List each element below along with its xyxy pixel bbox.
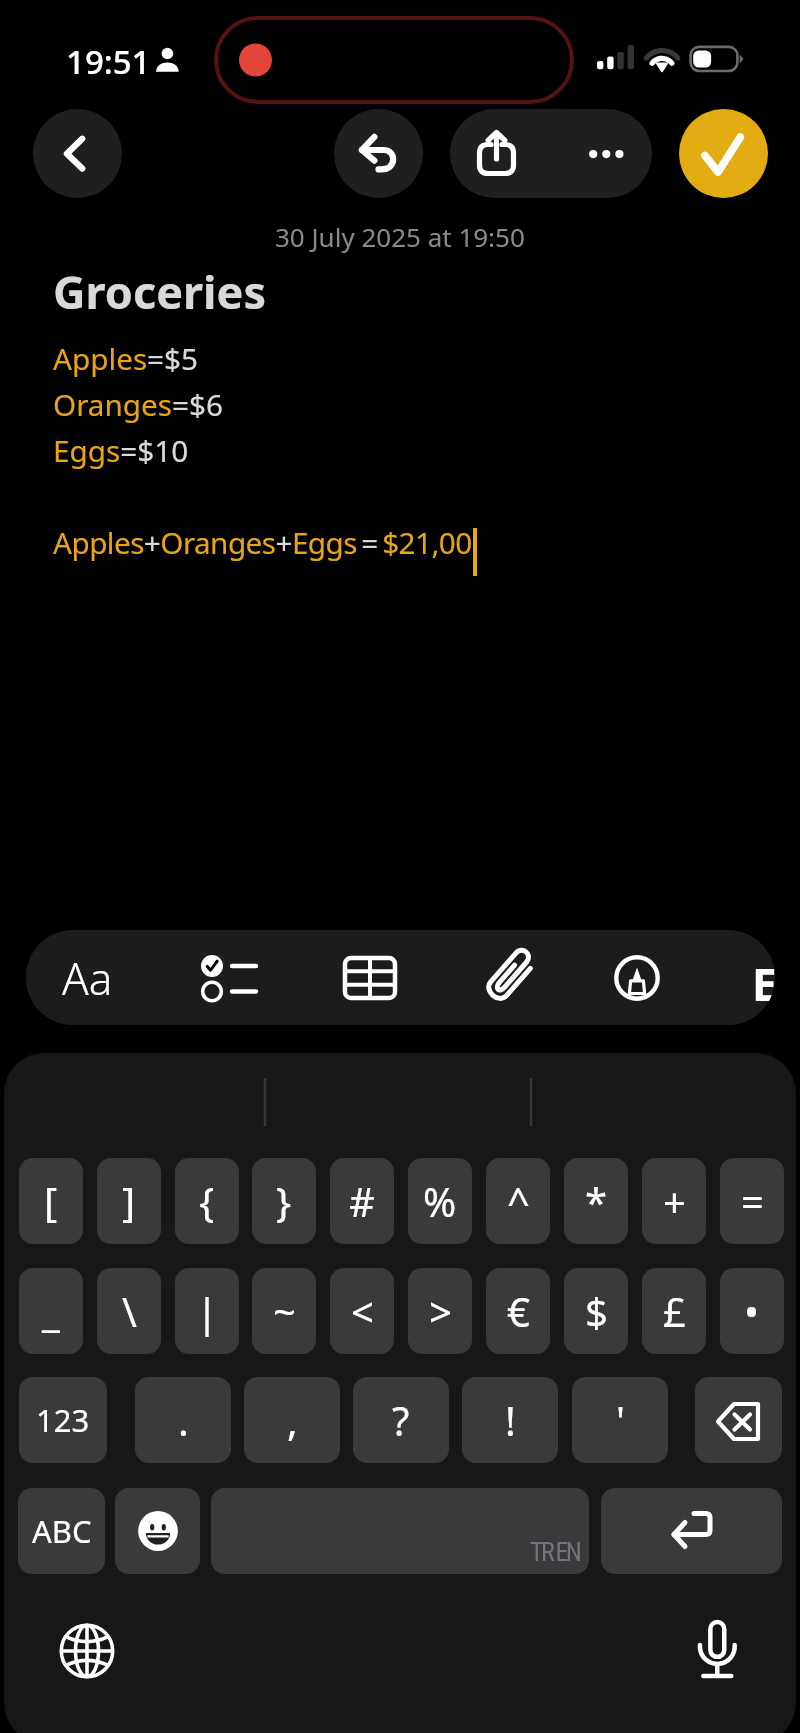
staticText: + bbox=[663, 1174, 686, 1228]
staticText: ? bbox=[392, 1393, 410, 1447]
button[interactable]: Done bbox=[679, 109, 768, 198]
button[interactable]: = bbox=[720, 1158, 784, 1244]
staticText: Aa bbox=[62, 948, 113, 1008]
button[interactable]: ! bbox=[462, 1377, 558, 1463]
button[interactable]: < bbox=[330, 1268, 394, 1354]
button[interactable]: ^ bbox=[486, 1158, 550, 1244]
staticText: 19:51 bbox=[66, 39, 151, 84]
button[interactable]: • bbox=[720, 1268, 784, 1354]
staticText: % bbox=[423, 1174, 457, 1228]
button[interactable]: Return bbox=[601, 1488, 782, 1574]
staticText: 30 July 2025 at 19:50 bbox=[275, 219, 525, 254]
button[interactable]: Aa bbox=[28, 930, 146, 1025]
button[interactable]: ? bbox=[353, 1377, 449, 1463]
button[interactable]: ABC bbox=[18, 1488, 105, 1574]
button[interactable]: . bbox=[135, 1377, 231, 1463]
button[interactable]: More options bbox=[551, 109, 652, 198]
staticText: . bbox=[178, 1393, 189, 1447]
staticText: ] bbox=[122, 1174, 136, 1228]
button[interactable]: Space bbox=[211, 1488, 589, 1574]
button[interactable]: ' bbox=[572, 1377, 668, 1463]
staticText: £ bbox=[663, 1284, 686, 1338]
staticText: , bbox=[287, 1393, 298, 1447]
staticText: $ bbox=[585, 1284, 608, 1338]
button[interactable]: _ bbox=[19, 1268, 83, 1354]
button[interactable]: \ bbox=[97, 1268, 161, 1354]
button[interactable]: { bbox=[175, 1158, 239, 1244]
button[interactable]: ~ bbox=[252, 1268, 316, 1354]
staticText: Apples=$5 Oranges=$6 Eggs=$10 bbox=[53, 338, 224, 471]
staticText: ' bbox=[616, 1393, 625, 1447]
button[interactable]: Checklist bbox=[166, 930, 276, 1025]
staticText: 123 bbox=[36, 1399, 90, 1441]
button[interactable]: [ bbox=[19, 1158, 83, 1244]
staticText: Apples+Oranges+Eggs = $21,00 bbox=[53, 522, 472, 562]
button[interactable]: } bbox=[252, 1158, 316, 1244]
button[interactable]: Back bbox=[33, 109, 122, 198]
staticText: • bbox=[744, 1284, 760, 1338]
staticText: < bbox=[351, 1284, 374, 1338]
button[interactable]: € bbox=[486, 1268, 550, 1354]
staticText: E bbox=[752, 954, 775, 1014]
staticText: { bbox=[199, 1174, 215, 1228]
button[interactable]: Backspace bbox=[695, 1377, 782, 1463]
button[interactable]: Change language bbox=[54, 1618, 120, 1684]
staticText: ! bbox=[505, 1393, 516, 1447]
button[interactable]: Emoji bbox=[115, 1488, 200, 1574]
button[interactable]: | bbox=[175, 1268, 239, 1354]
button[interactable]: , bbox=[244, 1377, 340, 1463]
button[interactable]: Table bbox=[315, 930, 425, 1025]
button[interactable]: 123 bbox=[19, 1377, 107, 1463]
staticText: TR EN bbox=[530, 1537, 580, 1567]
staticText: * bbox=[585, 1174, 608, 1228]
staticText: } bbox=[276, 1174, 292, 1228]
staticText: \ bbox=[122, 1284, 137, 1338]
button[interactable]: Share bbox=[450, 109, 551, 198]
button[interactable]: Markup bbox=[582, 930, 692, 1025]
staticText: ABC bbox=[32, 1510, 92, 1552]
button[interactable]: $ bbox=[564, 1268, 628, 1354]
staticText: € bbox=[507, 1284, 530, 1338]
button[interactable]: Undo bbox=[334, 109, 423, 198]
staticText: [ bbox=[44, 1174, 58, 1228]
button[interactable]: ] bbox=[97, 1158, 161, 1244]
button[interactable]: Attach bbox=[453, 930, 563, 1025]
staticText: > bbox=[429, 1284, 452, 1338]
staticText: = bbox=[741, 1174, 764, 1228]
staticText: ^ bbox=[507, 1174, 530, 1228]
button[interactable]: * bbox=[564, 1158, 628, 1244]
button[interactable]: Voice input bbox=[687, 1613, 749, 1675]
staticText: | bbox=[196, 1284, 219, 1338]
button[interactable]: > bbox=[408, 1268, 472, 1354]
staticText: _ bbox=[42, 1284, 60, 1338]
button[interactable]: % bbox=[408, 1158, 472, 1244]
staticText: # bbox=[349, 1174, 375, 1228]
button[interactable]: # bbox=[330, 1158, 394, 1244]
button[interactable]: + bbox=[642, 1158, 706, 1244]
staticText: Groceries bbox=[53, 261, 267, 322]
staticText: ~ bbox=[273, 1284, 296, 1338]
button[interactable]: £ bbox=[642, 1268, 706, 1354]
